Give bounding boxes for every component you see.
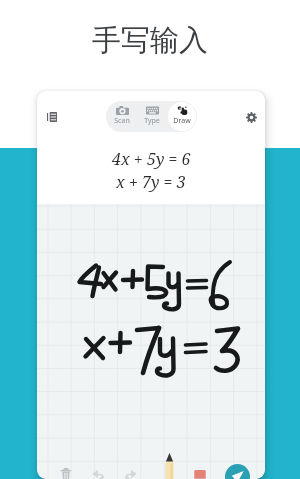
staticText: 手写输入	[92, 22, 208, 59]
button[interactable]: Scan	[107, 102, 136, 131]
button[interactable]: Type	[138, 102, 166, 131]
button[interactable]: Undo	[87, 462, 111, 479]
button[interactable]: Eraser	[188, 462, 212, 479]
button[interactable]: Redo	[118, 462, 142, 479]
button[interactable]: Draw	[168, 102, 196, 131]
button[interactable]: History	[40, 105, 64, 129]
staticText: Type	[144, 116, 160, 126]
staticText: Draw	[173, 116, 191, 126]
button[interactable]: Send	[225, 464, 250, 479]
button[interactable]: Delete	[54, 462, 78, 479]
button[interactable]: Pencil	[157, 453, 181, 479]
staticText: Scan	[114, 116, 130, 126]
staticText: 4x + 5y = 6	[112, 148, 191, 170]
staticText: x + 7y = 3	[116, 171, 186, 193]
button[interactable]: Settings	[239, 105, 263, 129]
